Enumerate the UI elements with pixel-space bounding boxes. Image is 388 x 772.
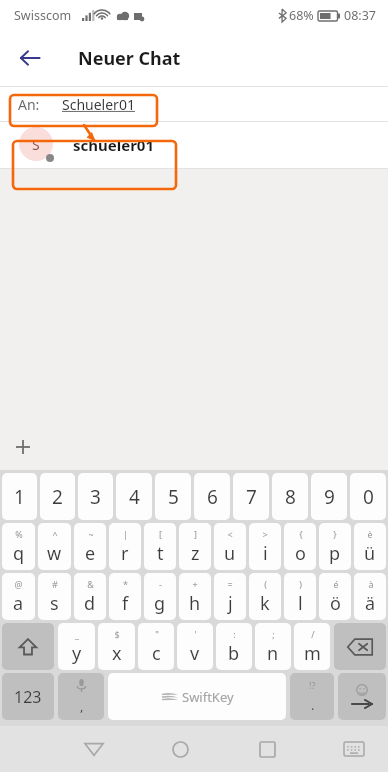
button[interactable]: 0	[350, 473, 386, 520]
staticText: m	[304, 641, 321, 666]
staticText: l	[298, 591, 303, 616]
button[interactable]: "	[138, 623, 174, 670]
staticText: $	[114, 628, 120, 640]
button[interactable]: à	[354, 573, 386, 620]
button[interactable]: S	[0, 122, 388, 168]
button[interactable]: An:	[0, 87, 388, 121]
button[interactable]: +	[179, 573, 211, 620]
button[interactable]: 1	[2, 473, 37, 520]
button[interactable]: 4	[116, 473, 152, 520]
button[interactable]: è	[354, 523, 386, 570]
staticText: é	[333, 578, 339, 590]
staticText: r	[121, 541, 129, 566]
button[interactable]: )	[284, 573, 316, 620]
staticText: }	[333, 528, 337, 540]
staticText: SwiftKey	[182, 688, 234, 706]
staticText: |	[123, 528, 128, 540]
staticText: An:	[18, 95, 40, 114]
staticText: Neuer Chat	[78, 46, 181, 71]
button[interactable]: =	[214, 573, 246, 620]
staticText: j	[228, 591, 233, 616]
staticText: è	[367, 528, 373, 540]
button[interactable]: -	[144, 573, 176, 620]
staticText: a	[13, 591, 24, 616]
button[interactable]: Backspace	[334, 623, 386, 670]
button[interactable]: é	[319, 573, 351, 620]
button[interactable]: !?	[290, 673, 334, 720]
staticText: 0	[363, 484, 374, 510]
staticText: 6	[207, 484, 218, 510]
button[interactable]: Home	[156, 726, 204, 772]
button[interactable]: _	[58, 623, 95, 670]
button[interactable]: |	[109, 523, 141, 570]
staticText: 123	[14, 686, 42, 708]
button[interactable]: $	[98, 623, 135, 670]
button[interactable]: Back	[8, 36, 52, 80]
button[interactable]: &	[74, 573, 106, 620]
staticText: 9	[324, 484, 335, 510]
staticText: Schueler01	[62, 95, 135, 114]
staticText: ~	[88, 528, 94, 540]
staticText: )	[299, 578, 302, 590]
button[interactable]: {	[284, 523, 316, 570]
button[interactable]: 6	[194, 473, 230, 520]
button[interactable]: Space	[108, 673, 286, 720]
button[interactable]: }	[319, 523, 351, 570]
staticText: >	[262, 528, 268, 540]
staticText: 68%	[289, 7, 314, 24]
button[interactable]: ~	[74, 523, 106, 570]
staticText: !?	[309, 679, 316, 691]
staticText: /	[311, 628, 315, 640]
staticText: y	[72, 641, 82, 666]
button[interactable]: (	[249, 573, 281, 620]
button[interactable]: %	[2, 523, 35, 570]
staticText: %	[15, 528, 23, 540]
staticText: o	[295, 541, 306, 566]
button[interactable]: '	[177, 623, 213, 670]
button[interactable]: Add attachment	[12, 436, 34, 458]
button[interactable]: Back	[70, 726, 118, 772]
staticText: d	[84, 591, 96, 616]
button[interactable]: [	[144, 523, 176, 570]
staticText: [	[159, 528, 162, 540]
button[interactable]: 123	[2, 673, 54, 720]
button[interactable]: @	[2, 573, 35, 620]
button[interactable]: Shift	[2, 623, 54, 670]
staticText: {	[299, 528, 303, 540]
staticText: (	[264, 578, 267, 590]
button[interactable]: 3	[78, 473, 113, 520]
button[interactable]: >	[249, 523, 281, 570]
staticText: 08:37	[344, 7, 376, 24]
staticText: 1	[14, 484, 25, 510]
button[interactable]: ^	[38, 523, 71, 570]
button[interactable]: /	[294, 623, 330, 670]
button[interactable]: <	[214, 523, 246, 570]
button[interactable]: 2	[40, 473, 75, 520]
staticText: ü	[364, 541, 376, 566]
button[interactable]: ]	[179, 523, 211, 570]
staticText: _	[75, 628, 79, 640]
button[interactable]: Recent apps	[243, 726, 291, 772]
staticText: e	[85, 541, 96, 566]
staticText: q	[13, 541, 25, 566]
button[interactable]: 7	[233, 473, 269, 520]
button[interactable]: 9	[311, 473, 347, 520]
staticText: ]	[194, 528, 197, 540]
staticText: 7	[246, 484, 257, 510]
staticText: -	[159, 578, 162, 590]
staticText: c	[152, 641, 161, 666]
button[interactable]: *	[109, 573, 141, 620]
button[interactable]: #	[38, 573, 71, 620]
staticText: #	[52, 578, 58, 590]
button[interactable]: ;	[255, 623, 291, 670]
button[interactable]: 5	[155, 473, 191, 520]
button[interactable]: :	[216, 623, 252, 670]
button[interactable]: 8	[272, 473, 308, 520]
staticText: +	[192, 578, 198, 590]
staticText: i	[263, 541, 268, 566]
button[interactable]: Voice input	[58, 673, 104, 720]
staticText: 8	[285, 484, 296, 510]
button[interactable]: Send	[338, 673, 386, 720]
button[interactable]: Hide keyboard	[330, 726, 378, 772]
staticText: =	[227, 578, 233, 590]
